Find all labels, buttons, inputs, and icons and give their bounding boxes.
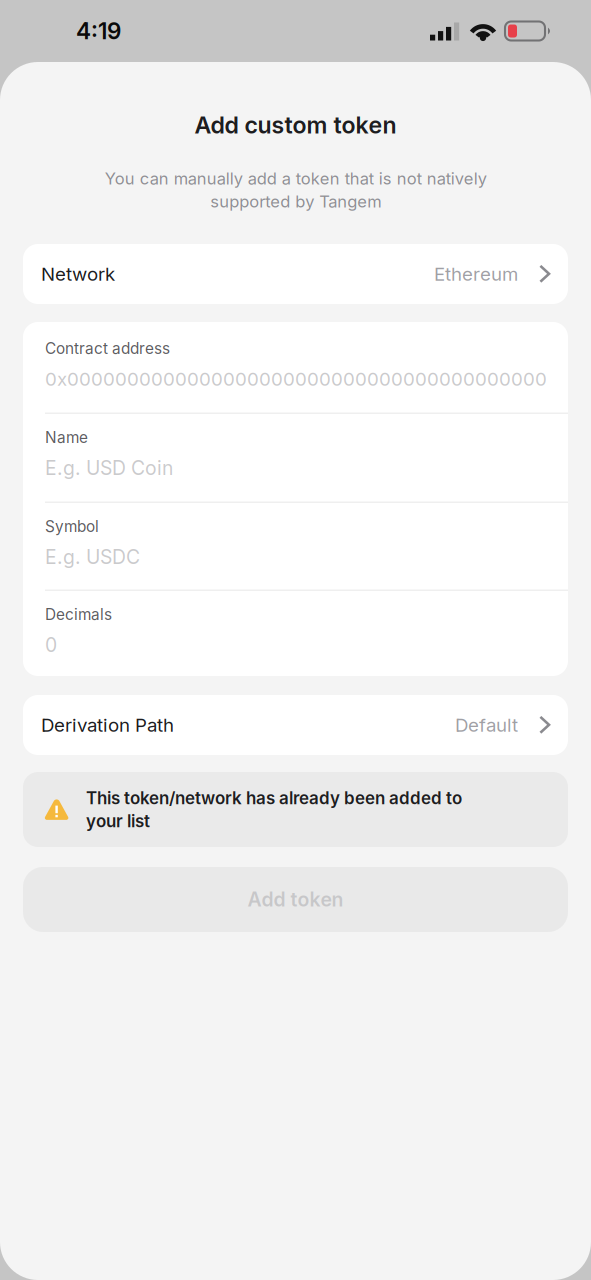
staticText: Name	[45, 428, 88, 447]
button[interactable]: Network	[23, 244, 568, 304]
staticText: You can manually add a token that is not…	[104, 168, 486, 188]
staticText: Symbol	[45, 517, 99, 536]
staticText: supported by Tangem	[210, 191, 381, 211]
staticText: 0	[45, 633, 57, 657]
staticText: This token/network has already been adde…	[86, 788, 462, 808]
staticText: Derivation Path	[41, 714, 174, 736]
staticText: 0x00000000000000000000000000000000000000…	[45, 368, 547, 390]
staticText: Contract address	[45, 339, 170, 358]
staticText: Add token	[247, 888, 343, 911]
button[interactable]: Add token	[23, 867, 568, 932]
staticText: your list	[86, 811, 150, 831]
staticText: Ethereum	[434, 263, 518, 285]
button[interactable]: Derivation Path	[23, 695, 568, 755]
staticText: Network	[41, 263, 115, 285]
staticText: E.g. USDC	[45, 545, 140, 569]
staticText: Decimals	[45, 605, 112, 624]
staticText: E.g. USD Coin	[45, 456, 173, 480]
staticText: Add custom token	[194, 111, 396, 139]
staticText: Default	[455, 714, 518, 736]
staticText: 4:19	[76, 17, 121, 45]
